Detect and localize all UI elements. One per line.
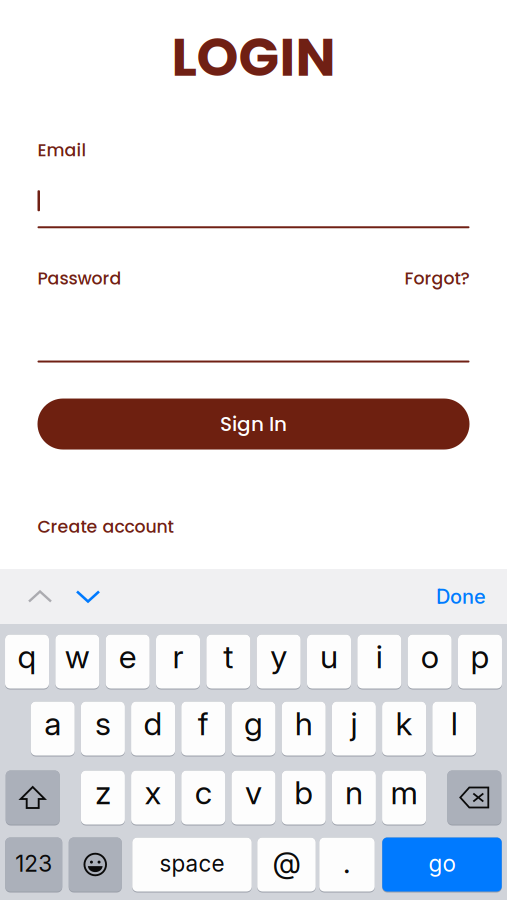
button[interactable]: f: [181, 700, 225, 755]
staticText: v: [245, 773, 262, 812]
button[interactable]: Delete: [447, 769, 501, 824]
staticText: Password: [37, 266, 121, 291]
button[interactable]: d: [131, 700, 175, 755]
staticText: space: [159, 850, 224, 877]
staticText: a: [44, 704, 61, 743]
staticText: Sign In: [220, 410, 287, 438]
staticText: Forgot?: [404, 266, 469, 291]
button[interactable]: u: [307, 633, 351, 688]
staticText: m: [391, 773, 418, 812]
button[interactable]: m: [382, 769, 426, 824]
staticText: n: [345, 773, 363, 812]
staticText: b: [294, 773, 313, 812]
button[interactable]: r: [156, 633, 200, 688]
staticText: c: [195, 773, 212, 812]
staticText: Email: [37, 138, 86, 162]
button[interactable]: q: [5, 633, 49, 688]
button[interactable]: z: [81, 769, 125, 824]
staticText: f: [198, 704, 209, 743]
staticText: go: [428, 850, 455, 877]
staticText: e: [119, 637, 137, 676]
button[interactable]: v: [231, 769, 275, 824]
staticText: @: [272, 845, 300, 880]
staticText: g: [244, 704, 263, 743]
button[interactable]: k: [382, 700, 426, 755]
button[interactable]: a: [31, 700, 75, 755]
button[interactable]: s: [81, 700, 125, 755]
button[interactable]: b: [282, 769, 326, 824]
button[interactable]: y: [257, 633, 301, 688]
staticText: s: [95, 704, 111, 743]
button[interactable]: space: [132, 836, 252, 891]
button[interactable]: x: [131, 769, 175, 824]
button[interactable]: Next field: [66, 574, 110, 618]
staticText: i: [376, 637, 383, 676]
staticText: y: [270, 637, 287, 676]
button[interactable]: Emoji: [69, 836, 122, 891]
button[interactable]: t: [206, 633, 250, 688]
button[interactable]: go: [382, 836, 502, 891]
button[interactable]: Done: [436, 574, 486, 618]
button[interactable]: 123: [5, 836, 62, 891]
button[interactable]: e: [106, 633, 150, 688]
staticText: j: [350, 704, 357, 743]
button[interactable]: c: [181, 769, 225, 824]
button[interactable]: n: [332, 769, 376, 824]
staticText: 123: [15, 850, 52, 877]
staticText: h: [295, 704, 313, 743]
staticText: r: [172, 637, 183, 676]
staticText: x: [145, 773, 162, 812]
button[interactable]: j: [332, 700, 376, 755]
button[interactable]: l: [432, 700, 476, 755]
staticText: LOGIN: [171, 20, 335, 94]
staticText: q: [17, 637, 36, 676]
staticText: Done: [436, 584, 486, 609]
button[interactable]: Sign In: [37, 398, 469, 449]
staticText: k: [396, 704, 413, 743]
staticText: l: [451, 704, 458, 743]
button[interactable]: p: [458, 633, 502, 688]
button[interactable]: o: [408, 633, 452, 688]
staticText: .: [343, 845, 351, 880]
button[interactable]: w: [55, 633, 99, 688]
staticText: o: [421, 637, 439, 676]
button[interactable]: h: [282, 700, 326, 755]
button[interactable]: Forgot?: [404, 266, 469, 291]
staticText: z: [95, 773, 111, 812]
button[interactable]: Create account: [37, 514, 173, 539]
button[interactable]: g: [231, 700, 275, 755]
button[interactable]: @: [257, 836, 316, 891]
button[interactable]: Shift: [6, 769, 60, 824]
staticText: w: [65, 637, 90, 676]
button[interactable]: Previous field: [18, 574, 62, 618]
staticText: p: [470, 637, 489, 676]
staticText: u: [320, 637, 338, 676]
staticText: Create account: [37, 514, 173, 539]
staticText: d: [144, 704, 163, 743]
button[interactable]: i: [357, 633, 401, 688]
staticText: t: [223, 637, 233, 676]
button[interactable]: .: [319, 836, 375, 891]
